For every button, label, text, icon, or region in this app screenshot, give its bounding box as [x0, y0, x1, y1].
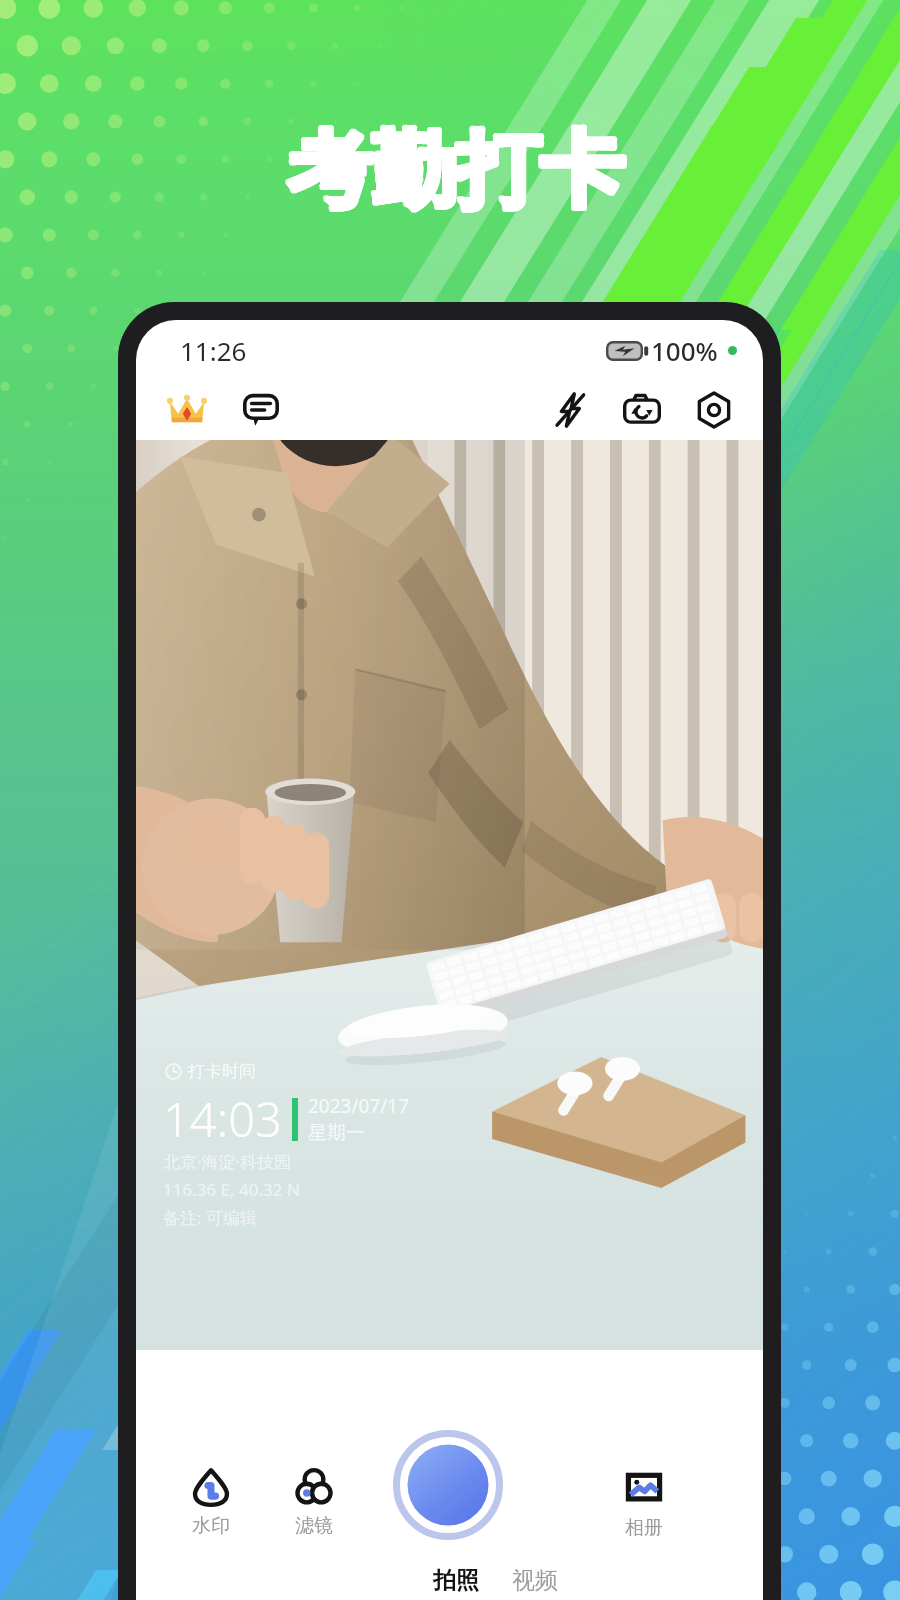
button[interactable]: Filter: [280, 1468, 348, 1538]
staticText: 星期一: [308, 1121, 365, 1145]
staticText: 北京·海淀·科技园: [163, 1150, 292, 1173]
button[interactable]: Album: [610, 1470, 678, 1540]
button[interactable]: 视频: [502, 1562, 568, 1599]
staticText: 滤镜: [295, 1514, 333, 1538]
button[interactable]: Feedback: [236, 385, 286, 435]
staticText: 14:03: [163, 1087, 282, 1151]
button[interactable]: 拍照: [423, 1562, 489, 1599]
staticText: 水印: [192, 1514, 230, 1538]
staticText: 116.36 E, 40.32 N: [163, 1178, 300, 1201]
staticText: 打卡时间: [188, 1061, 256, 1082]
staticText: 拍照: [433, 1566, 479, 1595]
staticText: 11:26: [180, 333, 247, 368]
button[interactable]: Flash off: [545, 385, 595, 435]
button[interactable]: Settings: [689, 385, 739, 435]
staticText: 100%: [651, 333, 718, 368]
button[interactable]: VIP: [162, 385, 212, 435]
button[interactable]: Watermark: [177, 1468, 245, 1538]
button[interactable]: Switch camera: [617, 385, 667, 435]
button[interactable]: Shutter: [393, 1430, 503, 1540]
staticText: 备注: 可编辑: [163, 1206, 257, 1229]
staticText: 视频: [512, 1566, 558, 1595]
staticText: 相册: [625, 1516, 663, 1540]
staticText: 2023/07/17: [308, 1093, 410, 1119]
